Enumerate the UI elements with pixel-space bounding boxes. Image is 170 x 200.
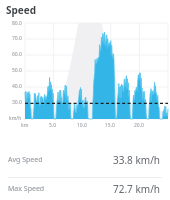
staticText: 60.0 <box>12 51 22 58</box>
staticText: 70.0 <box>12 35 22 42</box>
staticText: 33.8 km/h <box>113 153 161 167</box>
staticText: km <box>21 122 29 129</box>
staticText: 20.0 <box>134 122 144 129</box>
button[interactable]: Avg Speed <box>0 143 170 177</box>
staticText: 80.0 <box>12 20 22 27</box>
staticText: Avg Speed <box>8 155 43 165</box>
staticText: Max Speed <box>8 184 45 194</box>
staticText: 5.0 <box>49 122 57 129</box>
staticText: km/h <box>9 115 22 122</box>
staticText: 30.0 <box>12 99 22 106</box>
staticText: Speed <box>6 3 37 17</box>
staticText: 72.7 km/h <box>113 182 161 196</box>
staticText: 10.0 <box>77 122 87 129</box>
button[interactable]: Max Speed <box>0 178 170 200</box>
staticText: 40.0 <box>12 83 22 90</box>
button[interactable]: Speed over distance chart <box>0 21 170 135</box>
staticText: 50.0 <box>12 67 22 74</box>
staticText: 15.0 <box>105 122 115 129</box>
